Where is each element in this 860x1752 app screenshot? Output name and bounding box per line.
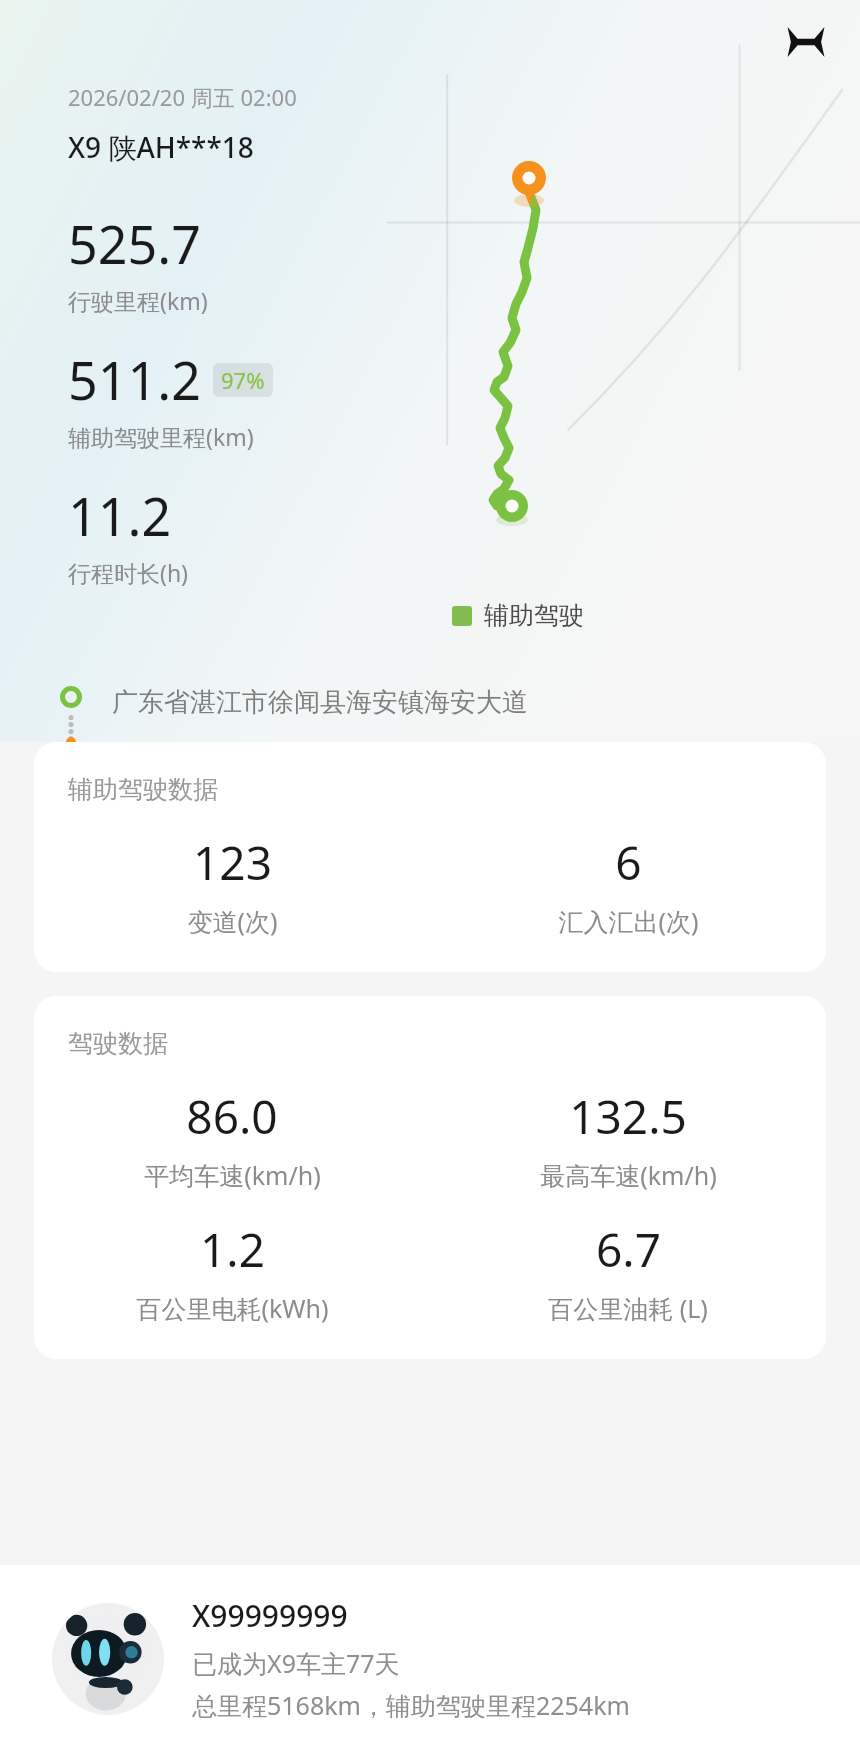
staticText: 汇入汇出(次) [558, 904, 699, 938]
staticText: 百公里油耗 (L) [548, 1291, 708, 1325]
staticText: 11.2 [68, 480, 172, 551]
staticText: 平均车速(km/h) [144, 1158, 321, 1192]
staticText: X99999999 [192, 1595, 348, 1636]
staticText: 辅助驾驶里程(km) [68, 421, 254, 452]
staticText: 132.5 [569, 1085, 687, 1148]
staticText: 6.7 [596, 1218, 661, 1281]
staticText: 525.7 [68, 208, 201, 279]
staticText: 511.2 [68, 344, 201, 415]
staticText: 最高车速(km/h) [540, 1158, 717, 1192]
staticText: 百公里电耗(kWh) [136, 1291, 329, 1325]
staticText: 广东省湛江市徐闻县海安镇海安大道 [112, 686, 528, 719]
staticText: X9 陕AH***18 [68, 128, 254, 166]
button[interactable]: 驾驶数据 [34, 996, 826, 1359]
staticText: 已成为X9车主77天 [192, 1646, 400, 1680]
staticText: 行程时长(h) [68, 557, 189, 588]
staticText: 86.0 [186, 1085, 278, 1148]
button[interactable]: 辅助驾驶数据 [34, 742, 826, 972]
staticText: 辅助驾驶数据 [68, 774, 218, 805]
staticText: 6 [615, 831, 642, 894]
staticText: 驾驶数据 [68, 1028, 168, 1059]
staticText: 123 [193, 831, 272, 894]
staticText: 97% [221, 365, 265, 395]
staticText: 辅助驾驶 [484, 600, 584, 631]
staticText: 变道(次) [187, 904, 278, 938]
button[interactable]: X99999999 [0, 1565, 860, 1752]
button[interactable]: Close [778, 14, 834, 70]
staticText: 1.2 [200, 1218, 265, 1281]
staticText: 2026/02/20 周五 02:00 [68, 82, 297, 112]
staticText: 总里程5168km，辅助驾驶里程2254km [192, 1688, 630, 1722]
staticText: 行驶里程(km) [68, 285, 208, 316]
